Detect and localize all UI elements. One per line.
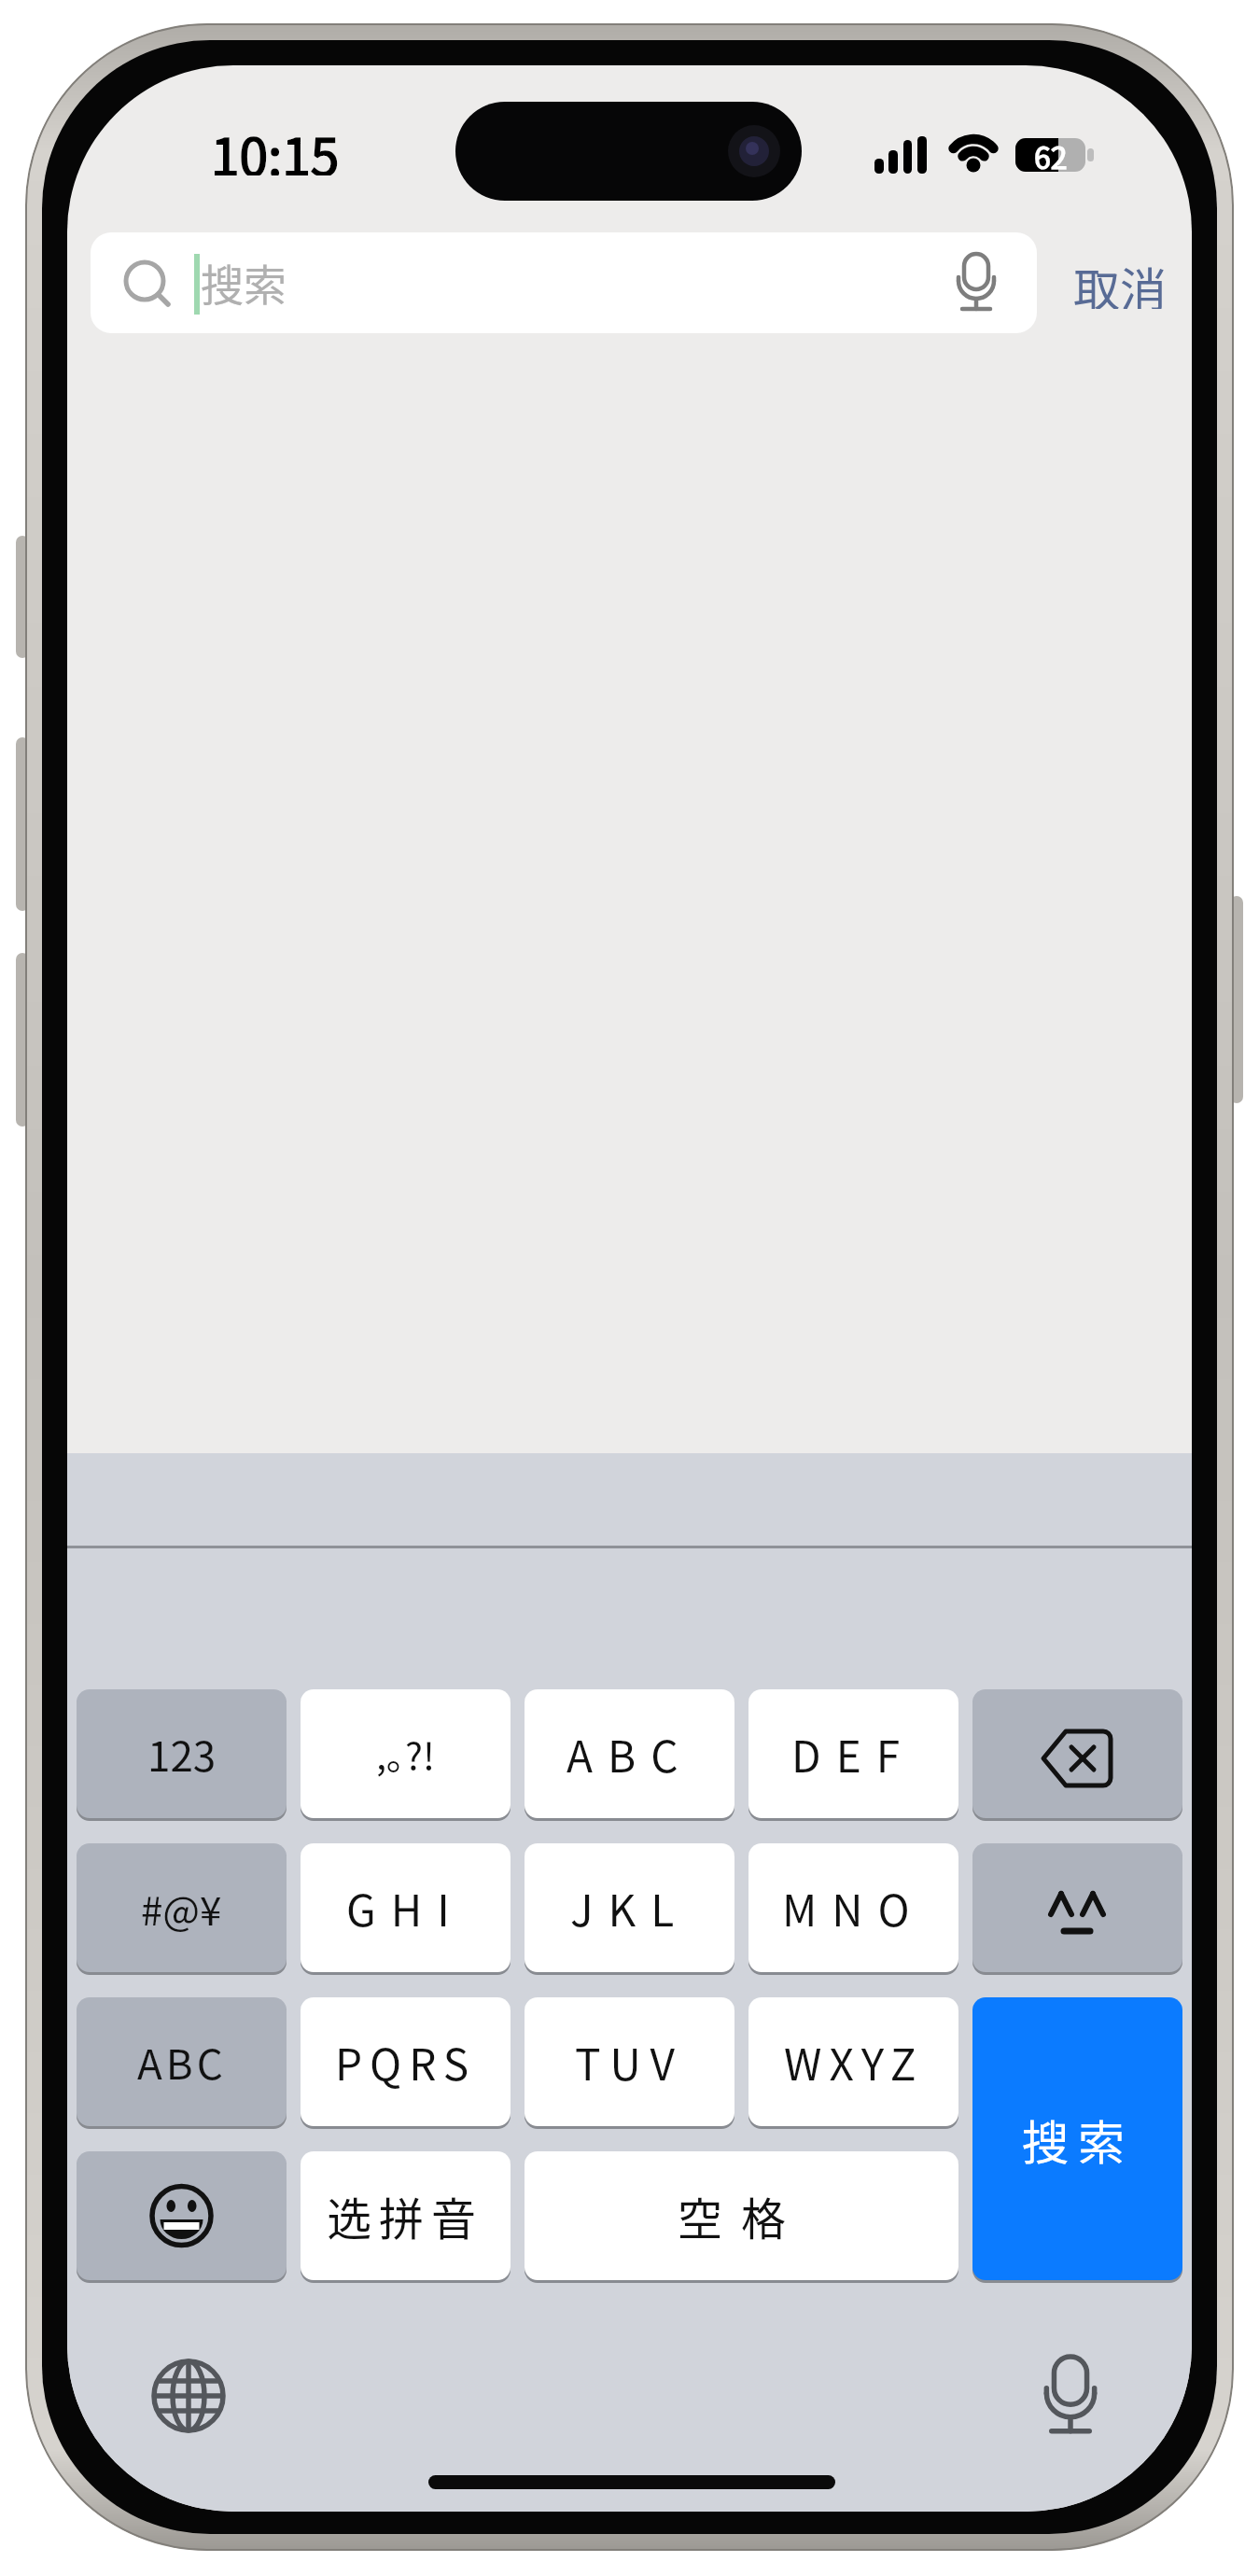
staticText: ,｡?! [376, 1727, 435, 1781]
button[interactable]: WXYZ [748, 1997, 958, 2126]
staticText: 123 [147, 1724, 217, 1784]
button[interactable]: 123 [77, 1689, 287, 1818]
button[interactable]: ABC [525, 1689, 734, 1818]
staticText: ABC [567, 1723, 693, 1785]
button[interactable]: #@¥ [77, 1843, 287, 1972]
staticText: 搜索 [201, 251, 287, 311]
button[interactable] [1019, 2343, 1122, 2445]
staticText: 取消 [1073, 253, 1167, 309]
button[interactable] [972, 1843, 1182, 1972]
staticText: DEF [791, 1723, 916, 1785]
button[interactable]: 选拼音 [301, 2151, 511, 2280]
staticText: GHI [346, 1877, 465, 1939]
button[interactable]: 搜索 [972, 1997, 1182, 2280]
button[interactable] [91, 232, 1037, 333]
button[interactable]: 空格 [525, 2151, 958, 2280]
button[interactable]: PQRS [301, 1997, 511, 2126]
staticText: ABC [137, 2032, 227, 2092]
staticText: 空格 [678, 2183, 805, 2248]
button[interactable]: TUV [525, 1997, 734, 2126]
staticText: 10:15 [211, 116, 340, 175]
staticText: WXYZ [784, 2031, 924, 2093]
staticText: JKL [570, 1877, 690, 1939]
button[interactable]: ABC [77, 1997, 287, 2126]
staticText: #@¥ [141, 1880, 222, 1937]
staticText: MNO [782, 1877, 925, 1939]
button[interactable]: ,｡?! [301, 1689, 511, 1818]
staticText: PQRS [335, 2031, 477, 2093]
button[interactable] [972, 1689, 1182, 1818]
staticText: 搜索 [1022, 2106, 1134, 2173]
button[interactable]: JKL [525, 1843, 734, 1972]
button[interactable]: GHI [301, 1843, 511, 1972]
button[interactable] [142, 2343, 245, 2445]
button[interactable] [77, 2151, 287, 2280]
staticText: TUV [575, 2031, 684, 2093]
staticText: 选拼音 [327, 2183, 484, 2248]
button[interactable]: 取消 [1059, 253, 1181, 309]
button[interactable]: MNO [748, 1843, 958, 1972]
staticText: 62 [1034, 134, 1068, 174]
button[interactable]: DEF [748, 1689, 958, 1818]
